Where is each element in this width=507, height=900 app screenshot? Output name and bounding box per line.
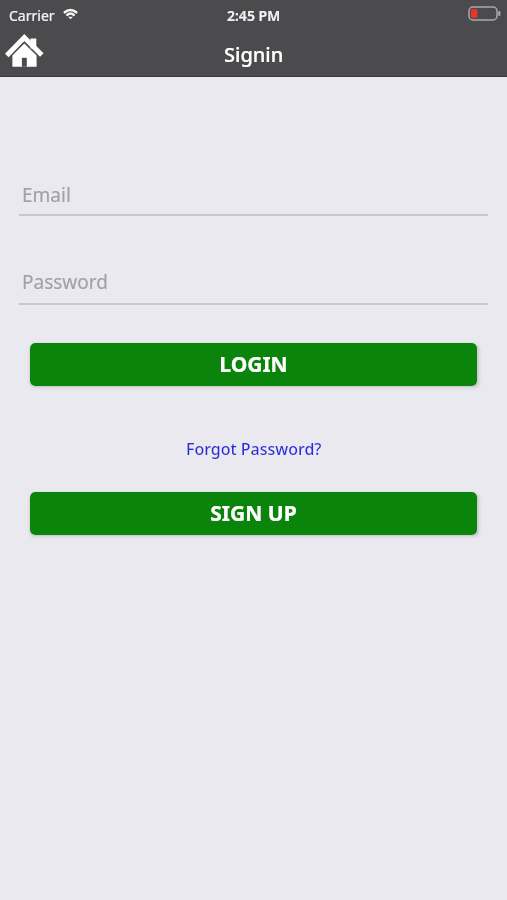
- staticText: 2:45 PM: [227, 6, 281, 25]
- button[interactable]: Forgot Password?: [186, 438, 322, 460]
- staticText: Email: [22, 182, 71, 208]
- button[interactable]: SIGN UP: [30, 492, 477, 535]
- staticText: Password: [22, 269, 108, 295]
- staticText: Signin: [224, 41, 284, 68]
- staticText: LOGIN: [219, 350, 288, 379]
- button[interactable]: [0, 32, 48, 74]
- staticText: SIGN UP: [210, 499, 297, 528]
- staticText: Carrier: [9, 6, 55, 25]
- button[interactable]: LOGIN: [30, 343, 477, 386]
